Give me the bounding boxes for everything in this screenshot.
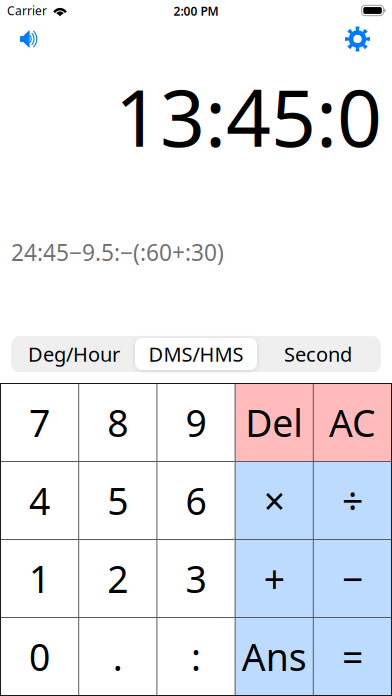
button[interactable]: ÷ bbox=[314, 462, 391, 539]
button[interactable]: Settings bbox=[334, 20, 392, 57]
button[interactable]: − bbox=[314, 540, 391, 617]
staticText: 8 bbox=[107, 398, 128, 447]
staticText: 13:45:0 bbox=[115, 64, 382, 168]
staticText: + bbox=[264, 554, 285, 603]
staticText: 4 bbox=[29, 476, 50, 525]
button[interactable]: : bbox=[157, 618, 235, 695]
button[interactable]: 2 bbox=[79, 540, 156, 617]
staticText: 3 bbox=[185, 554, 206, 603]
staticText: 5 bbox=[107, 476, 128, 525]
button[interactable]: + bbox=[236, 540, 313, 617]
button[interactable]: AC bbox=[314, 384, 391, 461]
staticText: Deg/Hour bbox=[28, 341, 120, 367]
button[interactable]: Del bbox=[236, 384, 313, 461]
staticText: Carrier bbox=[7, 2, 47, 18]
staticText: 24:45−9.5:−(:60+:30) bbox=[11, 237, 224, 267]
staticText: Del bbox=[245, 398, 303, 447]
button[interactable]: DMS/HMS bbox=[135, 338, 257, 370]
staticText: DMS/HMS bbox=[148, 341, 243, 367]
staticText: 6 bbox=[185, 476, 206, 525]
button[interactable]: Deg/Hour bbox=[13, 338, 135, 370]
staticText: 2 bbox=[107, 554, 128, 603]
button[interactable]: Ans bbox=[236, 618, 313, 695]
staticText: ÷ bbox=[342, 476, 363, 525]
button[interactable]: Second bbox=[257, 338, 379, 370]
button[interactable]: 1 bbox=[1, 540, 78, 617]
button[interactable]: 8 bbox=[79, 384, 156, 461]
button[interactable]: 4 bbox=[1, 462, 78, 539]
staticText: 2:00 PM bbox=[173, 3, 218, 19]
staticText: Second bbox=[284, 341, 352, 367]
staticText: : bbox=[191, 632, 201, 681]
button[interactable]: 3 bbox=[157, 540, 235, 617]
button[interactable]: . bbox=[79, 618, 156, 695]
staticText: 9 bbox=[185, 398, 206, 447]
button[interactable]: 5 bbox=[79, 462, 156, 539]
button[interactable]: Sound bbox=[0, 21, 43, 57]
staticText: = bbox=[342, 632, 363, 681]
button[interactable]: 9 bbox=[157, 384, 235, 461]
button[interactable]: = bbox=[314, 618, 391, 695]
staticText: 0 bbox=[29, 632, 50, 681]
button[interactable]: 6 bbox=[157, 462, 235, 539]
button[interactable]: 0 bbox=[1, 618, 78, 695]
staticText: × bbox=[264, 476, 285, 525]
button[interactable]: 7 bbox=[1, 384, 78, 461]
staticText: 1 bbox=[29, 554, 50, 603]
staticText: − bbox=[342, 554, 363, 603]
button[interactable]: × bbox=[236, 462, 313, 539]
staticText: . bbox=[113, 632, 123, 681]
staticText: 7 bbox=[29, 398, 50, 447]
staticText: Ans bbox=[242, 632, 307, 681]
staticText: AC bbox=[329, 398, 376, 447]
